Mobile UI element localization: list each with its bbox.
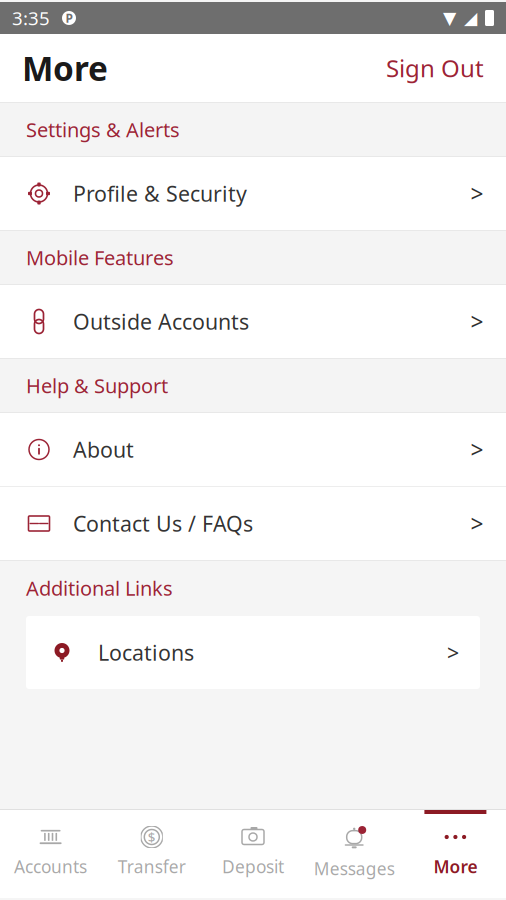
staticText: Sign Out <box>386 52 484 84</box>
staticText: > <box>470 434 483 464</box>
staticText: About <box>73 435 134 464</box>
staticText: 3:35 <box>12 6 50 30</box>
staticText: > <box>470 306 483 336</box>
staticText: Profile & Security <box>73 179 247 208</box>
staticText: $ <box>148 828 156 846</box>
staticText: ▼ <box>443 8 456 28</box>
staticText: Mobile Features <box>26 244 174 271</box>
button[interactable]: Contact Us / FAQs <box>0 487 506 560</box>
staticText: ◢ <box>464 8 477 28</box>
staticText: > <box>470 178 483 208</box>
button[interactable]: Locations <box>26 616 480 689</box>
button[interactable]: Accounts <box>0 810 101 898</box>
staticText: P <box>65 10 72 26</box>
staticText: More <box>22 46 108 90</box>
button[interactable]: Sign Out <box>374 42 496 94</box>
button[interactable]: About <box>0 413 506 487</box>
staticText: Deposit <box>222 855 284 878</box>
staticText: Transfer <box>118 855 186 878</box>
staticText: Help & Support <box>26 372 168 399</box>
button[interactable]: Outside Accounts <box>0 285 506 358</box>
staticText: Locations <box>98 638 194 667</box>
button[interactable]: More <box>405 810 506 898</box>
staticText: > <box>447 638 459 667</box>
button[interactable]: $ <box>101 810 202 898</box>
staticText: Messages <box>314 857 395 880</box>
staticText: Accounts <box>14 855 87 878</box>
staticText: Additional Links <box>26 575 173 601</box>
staticText: > <box>470 508 483 538</box>
staticText: Settings & Alerts <box>26 116 180 143</box>
staticText: More <box>433 855 477 878</box>
button[interactable]: Messages <box>304 810 405 898</box>
button[interactable]: Deposit <box>202 810 304 898</box>
staticText: Contact Us / FAQs <box>73 509 253 538</box>
staticText: Outside Accounts <box>73 307 249 336</box>
button[interactable]: Profile & Security <box>0 157 506 230</box>
